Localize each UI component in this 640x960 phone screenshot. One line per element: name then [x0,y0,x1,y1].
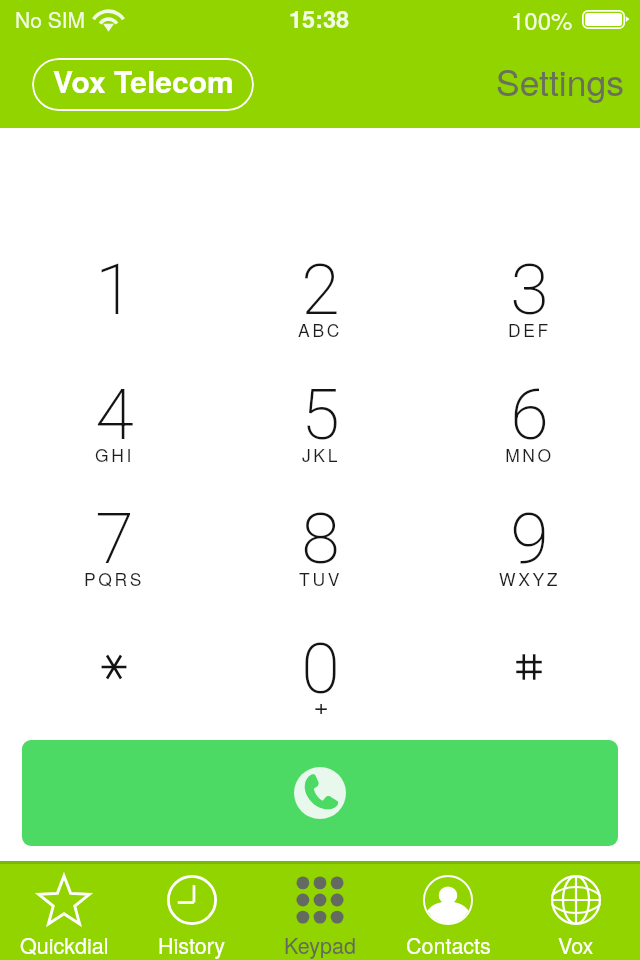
button[interactable]: Quickdial [0,864,128,960]
button[interactable]: Contacts [384,864,512,960]
staticText: ABC [298,317,342,342]
button[interactable]: 2 [222,249,418,359]
staticText: Vox Telecom [53,59,234,102]
staticText: 6 [510,374,549,456]
staticText: PQRS [84,566,144,591]
button[interactable]: 9 [431,498,627,608]
staticText: GHI [95,442,134,467]
button[interactable]: Keypad [256,864,384,960]
button[interactable]: 0 [222,628,418,738]
staticText: 5 [301,374,340,456]
staticText: 100% [511,2,573,36]
staticText: 3 [510,249,549,331]
staticText: WXYZ [499,566,560,591]
staticText: 4 [95,374,134,456]
button[interactable] [16,628,212,738]
staticText: Vox [558,929,594,960]
button[interactable]: Vox Telecom [32,58,254,111]
staticText: 8 [301,498,340,580]
staticText: Settings [496,55,624,106]
staticText: + [313,686,329,714]
staticText: 0 [301,628,340,710]
button[interactable]: History [128,864,256,960]
staticText: MNO [505,442,554,467]
button[interactable]: 4 [16,374,212,484]
staticText: TUV [299,566,342,591]
staticText: 2 [301,249,340,331]
staticText: 7 [95,498,134,580]
button[interactable]: 5 [222,374,418,484]
staticText: 1 [95,249,134,331]
staticText: History [158,929,226,960]
staticText: 15:38 [289,2,350,36]
button[interactable]: 6 [431,374,627,484]
button[interactable]: 1 [16,249,212,359]
staticText: Contacts [406,929,491,960]
button[interactable]: Vox [512,864,640,960]
button[interactable] [431,628,627,738]
staticText: No SIM [15,4,86,34]
staticText: DEF [508,317,551,342]
staticText: 9 [510,498,549,580]
staticText: JKL [302,442,340,467]
staticText: Keypad [284,929,356,960]
button[interactable]: 7 [16,498,212,608]
button[interactable]: Settings [496,59,640,110]
button[interactable]: Call [22,740,618,846]
button[interactable]: 8 [222,498,418,608]
button[interactable]: 3 [431,249,627,359]
staticText: Quickdial [20,929,109,960]
